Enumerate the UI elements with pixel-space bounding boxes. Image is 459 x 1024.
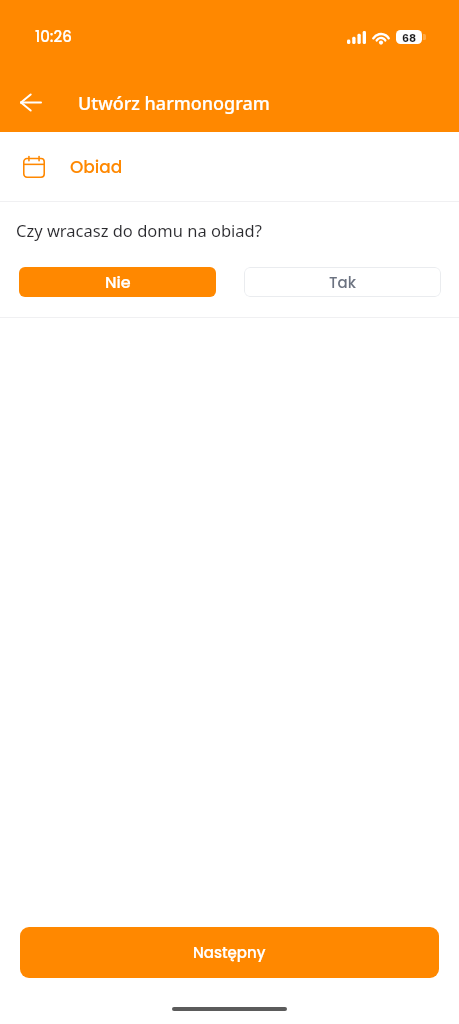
- staticText: Obiad: [70, 155, 123, 179]
- button[interactable]: Tak: [244, 267, 441, 297]
- staticText: Tak: [329, 272, 356, 293]
- staticText: Czy wracasz do domu na obiad?: [16, 219, 262, 241]
- staticText: Następny: [193, 942, 266, 963]
- button[interactable]: Back: [8, 80, 53, 125]
- button[interactable]: Następny: [20, 927, 439, 978]
- button[interactable]: Nie: [19, 267, 216, 297]
- button[interactable]: Obiad: [0, 132, 459, 201]
- staticText: 10:26: [35, 26, 72, 47]
- staticText: Nie: [105, 271, 131, 293]
- staticText: 68: [402, 30, 417, 44]
- staticText: Utwórz harmonogram: [78, 91, 270, 116]
